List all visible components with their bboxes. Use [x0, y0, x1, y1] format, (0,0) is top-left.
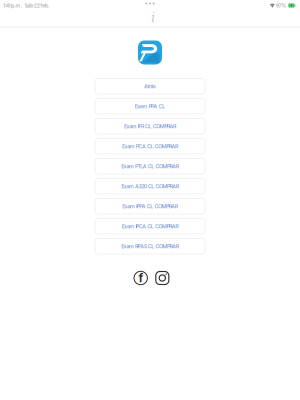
button[interactable]: Exam IPCA CL COMPRAR — [95, 218, 205, 234]
staticText: Exam IFR CL COMPRAR — [124, 123, 176, 129]
staticText: 1:41 p. m. — [3, 2, 21, 9]
button[interactable]: Exam A320 CL COMPRAR — [95, 178, 205, 194]
button[interactable]: Atrás — [95, 78, 205, 94]
button[interactable]: Exam IFR CL COMPRAR — [95, 118, 205, 134]
button[interactable]: Exam PCA CL COMPRAR — [95, 138, 205, 154]
button[interactable]: Exam PTLA CL COMPRAR — [95, 158, 205, 174]
staticText: Atrás — [144, 83, 156, 89]
staticText: Exam IPPA CL COMPRAR — [122, 203, 178, 209]
button[interactable]: Multitasking controls — [137, 0, 163, 6]
staticText: 97% — [276, 2, 287, 9]
staticText: Exam PCA CL COMPRAR — [122, 143, 178, 149]
staticText: Exam PPA CL — [135, 103, 165, 109]
staticText: i — [151, 10, 155, 25]
button[interactable]: Instagram — [154, 270, 170, 286]
button[interactable]: Exam RPAS CL COMPRAR — [95, 238, 205, 254]
staticText: Exam A320 CL COMPRAR — [121, 183, 179, 189]
button[interactable]: Facebook — [133, 270, 149, 286]
staticText: Sáb 22 feb. — [25, 2, 49, 9]
staticText: Exam RPAS CL COMPRAR — [121, 243, 179, 249]
button[interactable]: Exam IPPA CL COMPRAR — [95, 198, 205, 214]
staticText: Exam PTLA CL COMPRAR — [121, 163, 179, 169]
staticText: f — [138, 270, 143, 285]
button[interactable]: Exam PPA CL — [95, 98, 205, 114]
staticText: Exam IPCA CL COMPRAR — [122, 223, 178, 229]
